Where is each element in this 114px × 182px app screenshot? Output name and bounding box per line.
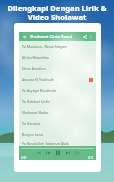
button[interactable]: Back: [21, 33, 28, 40]
button[interactable]: More options: [88, 34, 94, 40]
staticText: Ya Habibal Qolbi: [22, 99, 93, 104]
staticText: Ahlan Wasahlan: [22, 55, 93, 60]
staticText: 4:12: [88, 156, 94, 160]
button[interactable]: Repeat: [74, 150, 80, 156]
button[interactable]: Next: [65, 150, 71, 156]
button[interactable]: Shuffle: [36, 150, 42, 156]
button[interactable]: Busyro Lana: [19, 129, 96, 140]
button[interactable]: Ya Rosulallah Salamun Alaik: [19, 140, 96, 146]
button[interactable]: Ya Maulana - Nissa Sabyan: [19, 41, 96, 52]
button[interactable]: Ya Habibal Qolbi: [19, 96, 96, 107]
button[interactable]: Ya Asyiqol Musthofa: [19, 85, 96, 96]
button[interactable]: Atouna El Toufoule: [19, 74, 96, 85]
button[interactable]: Share: [81, 33, 88, 40]
staticText: Sholawat Badar: [22, 110, 93, 115]
staticText: Busyro Lana: [22, 132, 93, 137]
staticText: Sholawat Cinta Rasul: [30, 34, 81, 40]
staticText: Deen Assalam: [22, 66, 93, 71]
staticText: Ya Rosulallah Salamun Alaik: [22, 141, 93, 146]
button[interactable]: Deen Assalam: [19, 63, 96, 74]
staticText: 0:00: [21, 156, 27, 160]
staticText: Dilengkapi Dengan Lirik & Video Sholawat: [5, 3, 109, 22]
button[interactable]: Previous: [45, 150, 51, 156]
staticText: Ya Hanana: [22, 121, 93, 126]
button[interactable]: Sholawat Badar: [19, 107, 96, 118]
button[interactable]: Play: [54, 150, 62, 156]
staticText: Atouna El Toufoule: [22, 77, 89, 82]
button[interactable]: Ahlan Wasahlan: [19, 52, 96, 63]
button[interactable]: Ya Hanana: [19, 118, 96, 129]
staticText: Ya Maulana - Nissa Sabyan: [22, 44, 93, 49]
staticText: Ya Asyiqol Musthofa: [22, 88, 93, 93]
